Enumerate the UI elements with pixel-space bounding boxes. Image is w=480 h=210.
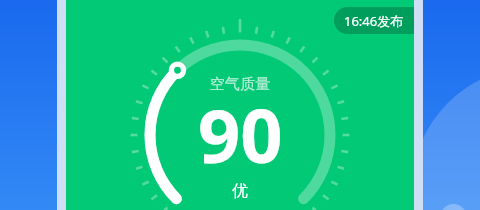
button[interactable]: 16:46发布 <box>334 7 414 34</box>
staticText: 16:46发布 <box>344 12 404 30</box>
staticText: 空气质量 <box>210 75 270 94</box>
staticText: 90 <box>198 84 283 185</box>
staticText: 优 <box>232 181 248 201</box>
button[interactable]: 空气质量 90 优 <box>66 0 414 210</box>
